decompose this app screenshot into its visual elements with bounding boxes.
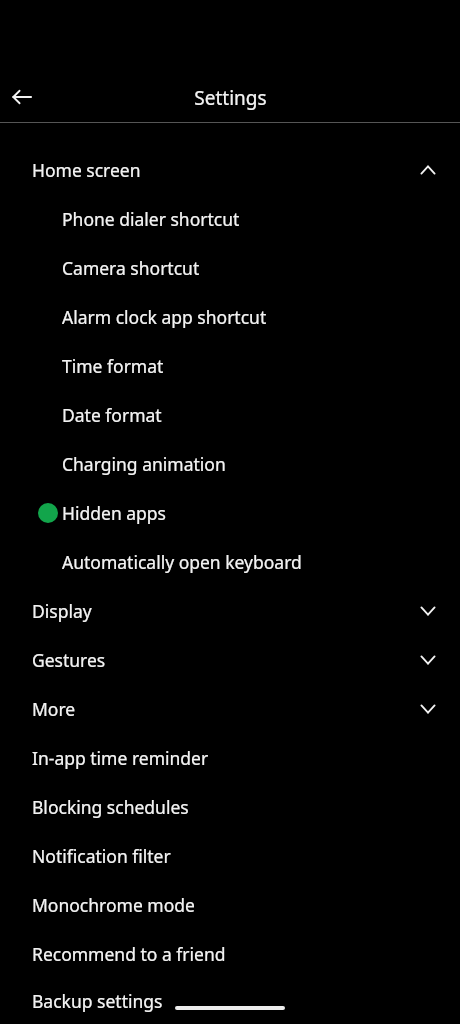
staticText: Blocking schedules	[32, 795, 189, 819]
button[interactable]: Hidden apps	[0, 488, 460, 537]
button[interactable]: Date format	[0, 390, 460, 439]
staticText: Camera shortcut	[62, 256, 200, 280]
staticText: Phone dialer shortcut	[62, 207, 240, 231]
staticText: Charging animation	[62, 452, 226, 476]
staticText: Settings	[194, 85, 267, 111]
button[interactable]: Notification filter	[0, 831, 460, 880]
button[interactable]: Recommend to a friend	[0, 929, 460, 978]
button[interactable]: Back	[0, 75, 44, 119]
button[interactable]: More	[0, 684, 460, 733]
button[interactable]: Display	[0, 586, 460, 635]
button[interactable]: In-app time reminder	[0, 733, 460, 782]
button[interactable]: Backup settings	[0, 978, 460, 1024]
button[interactable]: Charging animation	[0, 439, 460, 488]
button[interactable]: Monochrome mode	[0, 880, 460, 929]
staticText: Hidden apps	[62, 501, 166, 525]
button[interactable]: Camera shortcut	[0, 243, 460, 292]
staticText: Alarm clock app shortcut	[62, 305, 267, 329]
staticText: More	[32, 697, 76, 721]
staticText: In-app time reminder	[32, 746, 209, 770]
staticText: Recommend to a friend	[32, 942, 226, 966]
staticText: Monochrome mode	[32, 893, 195, 917]
button[interactable]: Automatically open keyboard	[0, 537, 460, 586]
staticText: Home screen	[32, 158, 141, 182]
button[interactable]: Phone dialer shortcut	[0, 194, 460, 243]
staticText: Date format	[62, 403, 162, 427]
staticText: Backup settings	[32, 989, 163, 1013]
staticText: Gestures	[32, 648, 106, 672]
staticText: Automatically open keyboard	[62, 550, 302, 574]
button[interactable]: Alarm clock app shortcut	[0, 292, 460, 341]
button[interactable]: Gestures	[0, 635, 460, 684]
staticText: Display	[32, 599, 92, 623]
button[interactable]: Time format	[0, 341, 460, 390]
button[interactable]: Blocking schedules	[0, 782, 460, 831]
staticText: Notification filter	[32, 844, 171, 868]
staticText: Time format	[62, 354, 164, 378]
button[interactable]: Home screen	[0, 145, 460, 194]
